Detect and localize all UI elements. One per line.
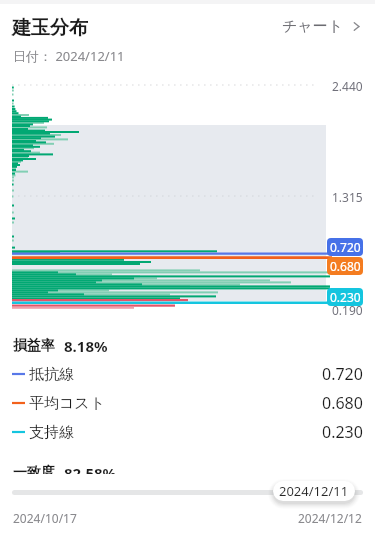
staticText: 8.18% <box>64 336 108 356</box>
staticText: 抵抗線 <box>29 365 74 384</box>
button[interactable]: 抵抗線 <box>0 359 375 389</box>
other: Open chart <box>351 21 362 32</box>
staticText: 支持線 <box>29 423 74 442</box>
staticText: 平均コスト <box>29 394 106 413</box>
button[interactable]: 平均コスト <box>0 388 375 418</box>
staticText: 0.720 <box>322 363 363 385</box>
staticText: 2024/12/12 <box>298 510 362 526</box>
button[interactable]: チャート <box>279 14 365 39</box>
button[interactable]: 2024/12/11 <box>273 481 355 501</box>
staticText: 2024/12/11 <box>279 482 349 500</box>
staticText: 損益率 <box>13 337 55 355</box>
staticText: 2.440 <box>332 78 363 94</box>
staticText: 0.680 <box>322 392 363 414</box>
button[interactable]: 0.230 <box>327 288 363 306</box>
staticText: 0.680 <box>330 258 361 274</box>
staticText: 建玉分布 <box>12 16 88 40</box>
staticText: 0.190 <box>332 302 363 318</box>
button[interactable]: 支持線 <box>0 417 375 447</box>
staticText: 2024/10/17 <box>13 510 77 526</box>
staticText: チャート <box>282 17 344 36</box>
staticText: 0.230 <box>330 289 361 305</box>
staticText: 0.230 <box>322 421 363 443</box>
staticText: 一致度 <box>13 464 55 474</box>
staticText: 82.58% <box>64 463 117 474</box>
staticText: 日付： 2024/12/11 <box>13 47 125 65</box>
button[interactable]: 0.720 <box>327 238 363 256</box>
staticText: 1.315 <box>332 189 363 205</box>
button[interactable]: 0.680 <box>327 257 363 275</box>
button[interactable]: 建玉分布 <box>12 16 88 40</box>
staticText: 0.720 <box>330 239 361 255</box>
